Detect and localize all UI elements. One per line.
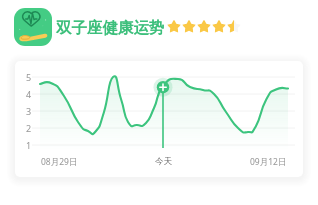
staticText: 今天	[155, 156, 172, 167]
button[interactable]: 健康运势	[14, 8, 52, 46]
staticText: 1	[26, 139, 32, 151]
staticText: 4	[26, 88, 32, 100]
staticText: 3	[26, 105, 32, 117]
staticText: 5	[26, 71, 32, 83]
staticText: 双子座健康运势	[56, 18, 165, 38]
staticText: 09月12日	[250, 156, 287, 168]
staticText: 08月29日	[41, 156, 78, 168]
staticText: 2	[26, 122, 32, 134]
button[interactable]: 双子座健康运势	[56, 18, 165, 38]
